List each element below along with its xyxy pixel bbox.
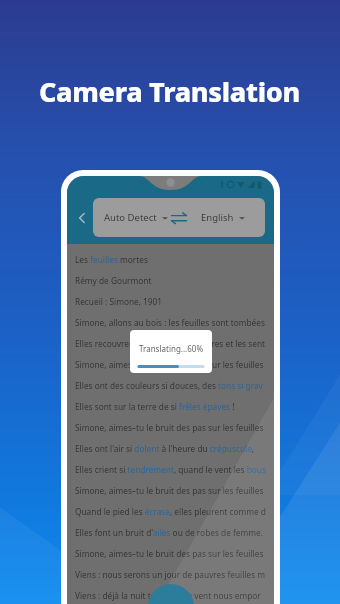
staticText: Elles ont des couleurs si douces, des to… — [75, 380, 263, 391]
staticText: Translating...60% — [139, 343, 204, 354]
staticText: Simone, aimes–tu le bruit des pas sur le… — [75, 548, 264, 559]
button[interactable]: Capture — [148, 584, 194, 604]
staticText: Elles recouvrent la mousse, les pierres … — [75, 338, 266, 349]
staticText: Simone, aimes–tu le bruit des pas sur le… — [75, 422, 264, 433]
staticText: Rémy de Gourmont — [75, 275, 152, 286]
staticText: Recueil : Simone, 1901 — [75, 296, 163, 307]
button[interactable]: Back — [71, 207, 93, 229]
staticText: Viens : nous serons un jour de pauvres f… — [75, 569, 266, 580]
staticText: Auto Detect — [104, 211, 157, 224]
staticText: Viens : déjà la nuit tombe et le vent no… — [75, 590, 261, 601]
staticText: Simone, aimes–tu le bruit des pas sur le… — [75, 359, 264, 370]
staticText: Simone, aimes–tu le bruit des pas sur le… — [75, 485, 264, 496]
staticText: Elles font un bruit d'ailes ou de robes … — [75, 527, 263, 538]
staticText: Simone, allons au bois : les feuilles so… — [75, 317, 265, 328]
staticText: Camera Translation — [39, 73, 301, 110]
staticText: Quand le pied les écrase, elles pleurent… — [75, 506, 266, 517]
staticText: Elles sont sur la terre de si frêles épa… — [75, 401, 235, 412]
staticText: Elles ont l'air si dolent à l'heure du c… — [75, 443, 255, 454]
button[interactable]: Auto Detect — [93, 198, 265, 237]
staticText: Les feuilles mortes — [75, 254, 148, 265]
staticText: Elles crient si tendrement, quand le ven… — [75, 464, 266, 475]
staticText: English — [201, 211, 234, 224]
